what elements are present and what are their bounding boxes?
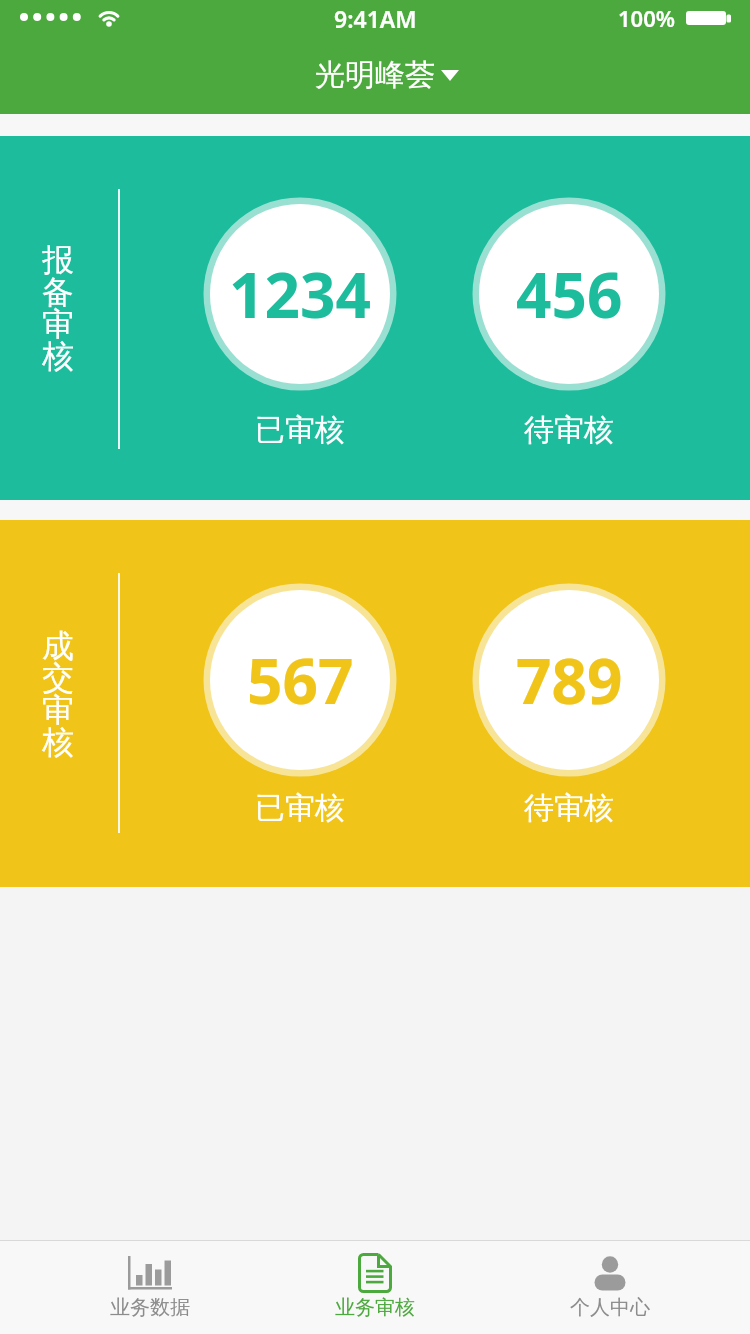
staticText: 已审核	[255, 789, 345, 827]
button[interactable]: 成 交 审 核	[0, 520, 750, 887]
button[interactable]: 业务数据	[50, 1253, 250, 1320]
staticText: 100%	[618, 3, 676, 33]
button[interactable]: 业务审核	[275, 1253, 475, 1320]
staticText: 成 交 审 核	[42, 626, 74, 762]
staticText: 个人中心	[570, 1295, 650, 1320]
staticText: 已审核	[255, 411, 345, 449]
staticText: 待审核	[524, 411, 614, 449]
button[interactable]: 光明峰荟	[0, 36, 750, 114]
staticText: 567	[247, 638, 354, 722]
staticText: 1234	[229, 252, 371, 336]
staticText: 业务审核	[335, 1295, 415, 1320]
staticText: 光明峰荟	[315, 56, 435, 94]
staticText: 业务数据	[110, 1295, 190, 1320]
button[interactable]: 报 备 审 核	[0, 136, 750, 500]
staticText: 报 备 审 核	[42, 240, 74, 376]
button[interactable]: 个人中心	[510, 1253, 710, 1320]
staticText: 待审核	[524, 789, 614, 827]
staticText: 9:41AM	[334, 3, 417, 34]
staticText: 456	[516, 252, 623, 336]
staticText: 789	[516, 638, 623, 722]
